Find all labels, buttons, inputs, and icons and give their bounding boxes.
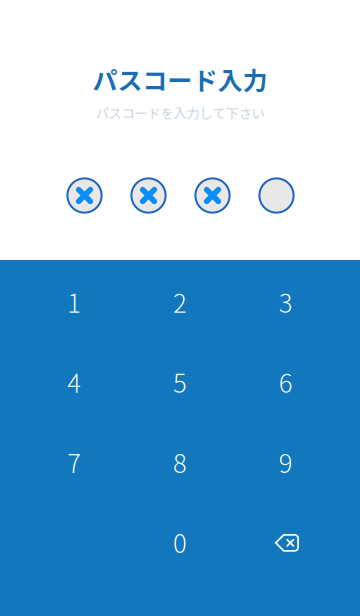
button[interactable]: 6 (233, 342, 338, 422)
button[interactable]: 2 (127, 261, 233, 342)
button[interactable]: 9 (233, 422, 338, 502)
button[interactable]: 7 (21, 422, 127, 502)
button[interactable]: 4 (21, 342, 127, 422)
staticText: 5 (173, 363, 187, 400)
button[interactable]: 5 (127, 342, 233, 422)
staticText: パスコードを入力して下さい (95, 103, 264, 122)
staticText: 4 (67, 363, 81, 400)
button[interactable]: 0 (127, 502, 233, 582)
staticText: 8 (173, 443, 187, 480)
button[interactable]: 8 (127, 422, 233, 502)
staticText: パスコード入力 (92, 61, 267, 97)
staticText: 1 (67, 283, 81, 320)
button[interactable]: 1 (21, 261, 127, 342)
staticText: 3 (279, 283, 293, 320)
staticText: 6 (279, 363, 293, 400)
button[interactable]: Delete (233, 502, 338, 582)
staticText: 0 (173, 523, 187, 560)
staticText: 9 (279, 443, 293, 480)
staticText: 2 (173, 283, 187, 320)
staticText: 7 (67, 443, 81, 480)
button[interactable]: 3 (233, 261, 338, 342)
